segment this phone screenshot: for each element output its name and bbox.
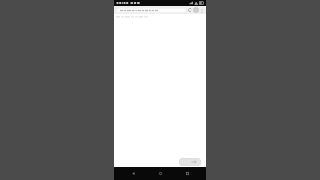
button[interactable]: Recent apps — [179, 167, 195, 180]
button[interactable]: Reload — [187, 7, 193, 13]
button[interactable]: Back — [125, 167, 141, 180]
button[interactable]: Next — [179, 158, 201, 166]
button[interactable] — [116, 8, 186, 13]
button[interactable]: Tabs — [193, 7, 199, 13]
button[interactable]: More options — [199, 8, 204, 13]
button[interactable]: Home — [152, 167, 168, 180]
